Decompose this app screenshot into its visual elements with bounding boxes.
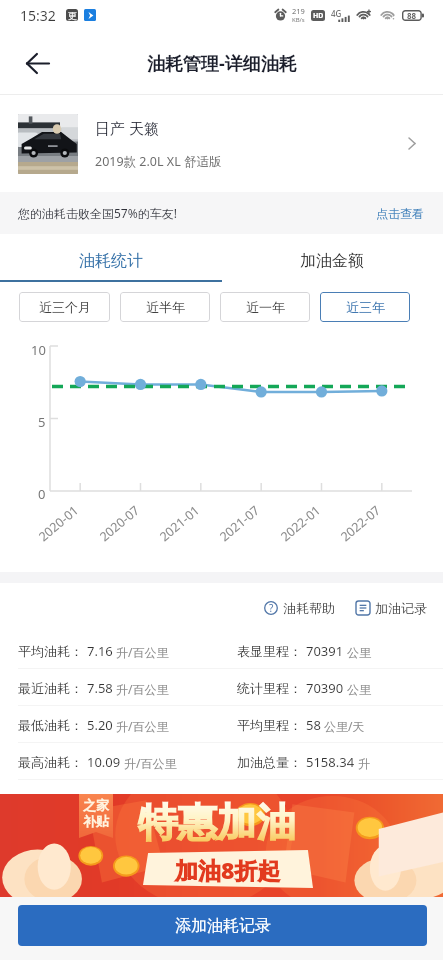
staticText: 升/百公里 [116, 681, 169, 697]
staticText: 之家 [83, 797, 109, 813]
staticText: 4G [331, 8, 342, 19]
staticText: 加油8折起 [175, 854, 281, 885]
staticText: 加油总量： [237, 754, 302, 770]
staticText: 最低油耗： [18, 717, 83, 733]
staticText: 升/百公里 [124, 755, 177, 771]
button[interactable]: 油耗统计 [0, 234, 221, 282]
staticText: 升 [358, 756, 370, 771]
staticText: 近三个月 [39, 299, 91, 315]
staticText: 88 [407, 10, 417, 21]
button[interactable]: 加油记录 [354, 592, 429, 624]
staticText: 添加油耗记录 [175, 916, 271, 936]
staticText: 2019款 2.0L XL 舒适版 [95, 153, 222, 170]
staticText: 10 [31, 341, 46, 359]
staticText: 2021-07 [216, 502, 263, 545]
staticText: 加油记录 [375, 600, 427, 616]
staticText: 公里 [347, 645, 371, 660]
staticText: 58 [306, 716, 321, 734]
staticText: 日产 天籁 [95, 118, 159, 138]
button[interactable]: 近三年 [320, 292, 410, 322]
staticText: 更 [68, 10, 77, 21]
staticText: 最近油耗： [18, 680, 83, 696]
staticText: 特惠加油 [138, 798, 296, 847]
button[interactable]: 近三个月 [19, 292, 110, 322]
button[interactable]: 点击查看 [376, 200, 424, 227]
staticText: 5158.34 [306, 753, 355, 771]
staticText: 5 [38, 413, 46, 431]
staticText: ? [269, 601, 274, 615]
staticText: 公里 [347, 682, 371, 697]
staticText: 70390 [306, 679, 344, 697]
staticText: 2022-01 [277, 502, 324, 545]
staticText: 219 [292, 6, 305, 16]
staticText: 2021-01 [156, 502, 203, 545]
staticText: 70391 [306, 642, 344, 660]
staticText: 近一年 [246, 299, 285, 315]
staticText: 油耗帮助 [283, 600, 335, 616]
staticText: 点击查看 [376, 206, 424, 221]
button[interactable]: Back [14, 39, 62, 87]
staticText: 升/百公里 [116, 644, 169, 660]
staticText: 近三年 [346, 299, 385, 315]
staticText: 5.20 [87, 716, 113, 734]
staticText: 10.09 [87, 753, 121, 771]
staticText: 平均油耗： [18, 643, 83, 659]
staticText: 0 [38, 485, 46, 503]
staticText: 加油金额 [300, 251, 364, 271]
staticText: 升/百公里 [116, 718, 169, 734]
staticText: 15:32 [20, 6, 56, 25]
button[interactable]: 加油金额 [221, 234, 443, 282]
staticText: KB/s [292, 16, 305, 24]
staticText: 最高油耗： [18, 754, 83, 770]
button[interactable]: ? [262, 592, 337, 624]
button[interactable]: 近半年 [120, 292, 210, 322]
staticText: 2020-07 [96, 502, 143, 545]
staticText: 7.58 [87, 679, 113, 697]
staticText: 油耗管理-详细油耗 [147, 51, 297, 76]
staticText: HD [313, 11, 324, 21]
staticText: 公里/天 [324, 718, 365, 734]
staticText: 7.16 [87, 642, 113, 660]
staticText: 2020-01 [35, 502, 82, 545]
button[interactable]: 特惠加油广告 [0, 794, 443, 897]
button[interactable]: 日产 天籁 [0, 95, 443, 192]
staticText: 表显里程： [237, 643, 302, 659]
staticText: 2022-07 [337, 502, 384, 545]
staticText: 您的油耗击败全国57%的车友! [18, 205, 177, 221]
staticText: 统计里程： [237, 680, 302, 696]
staticText: 补贴 [83, 813, 109, 829]
staticText: 平均里程： [237, 717, 302, 733]
button[interactable]: 近一年 [220, 292, 310, 322]
staticText: 近半年 [146, 299, 185, 315]
button[interactable]: 添加油耗记录 [18, 905, 427, 946]
staticText: 油耗统计 [79, 251, 143, 271]
